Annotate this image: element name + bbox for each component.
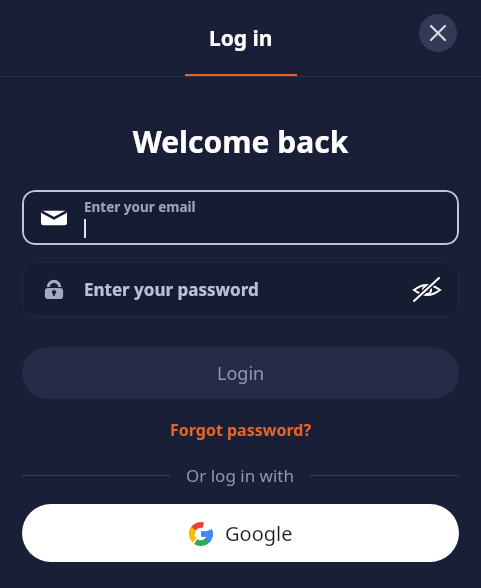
button[interactable]: Login bbox=[22, 347, 459, 399]
staticText: Welcome back bbox=[0, 121, 481, 162]
button[interactable]: Forgot password? bbox=[0, 419, 481, 441]
staticText: Or log in with bbox=[186, 464, 294, 487]
button[interactable]: Log in bbox=[191, 16, 291, 61]
staticText: Enter your email bbox=[84, 198, 196, 216]
button[interactable]: Close bbox=[419, 14, 457, 52]
staticText: Log in bbox=[209, 24, 273, 53]
button[interactable]: Enter your password bbox=[22, 262, 459, 317]
button[interactable]: Show password bbox=[407, 270, 447, 310]
staticText: Enter your password bbox=[84, 278, 259, 301]
button[interactable]: Enter your email bbox=[22, 190, 459, 245]
button[interactable]: Google bbox=[22, 504, 459, 562]
staticText: Google bbox=[225, 520, 293, 547]
staticText: Login bbox=[217, 361, 265, 386]
